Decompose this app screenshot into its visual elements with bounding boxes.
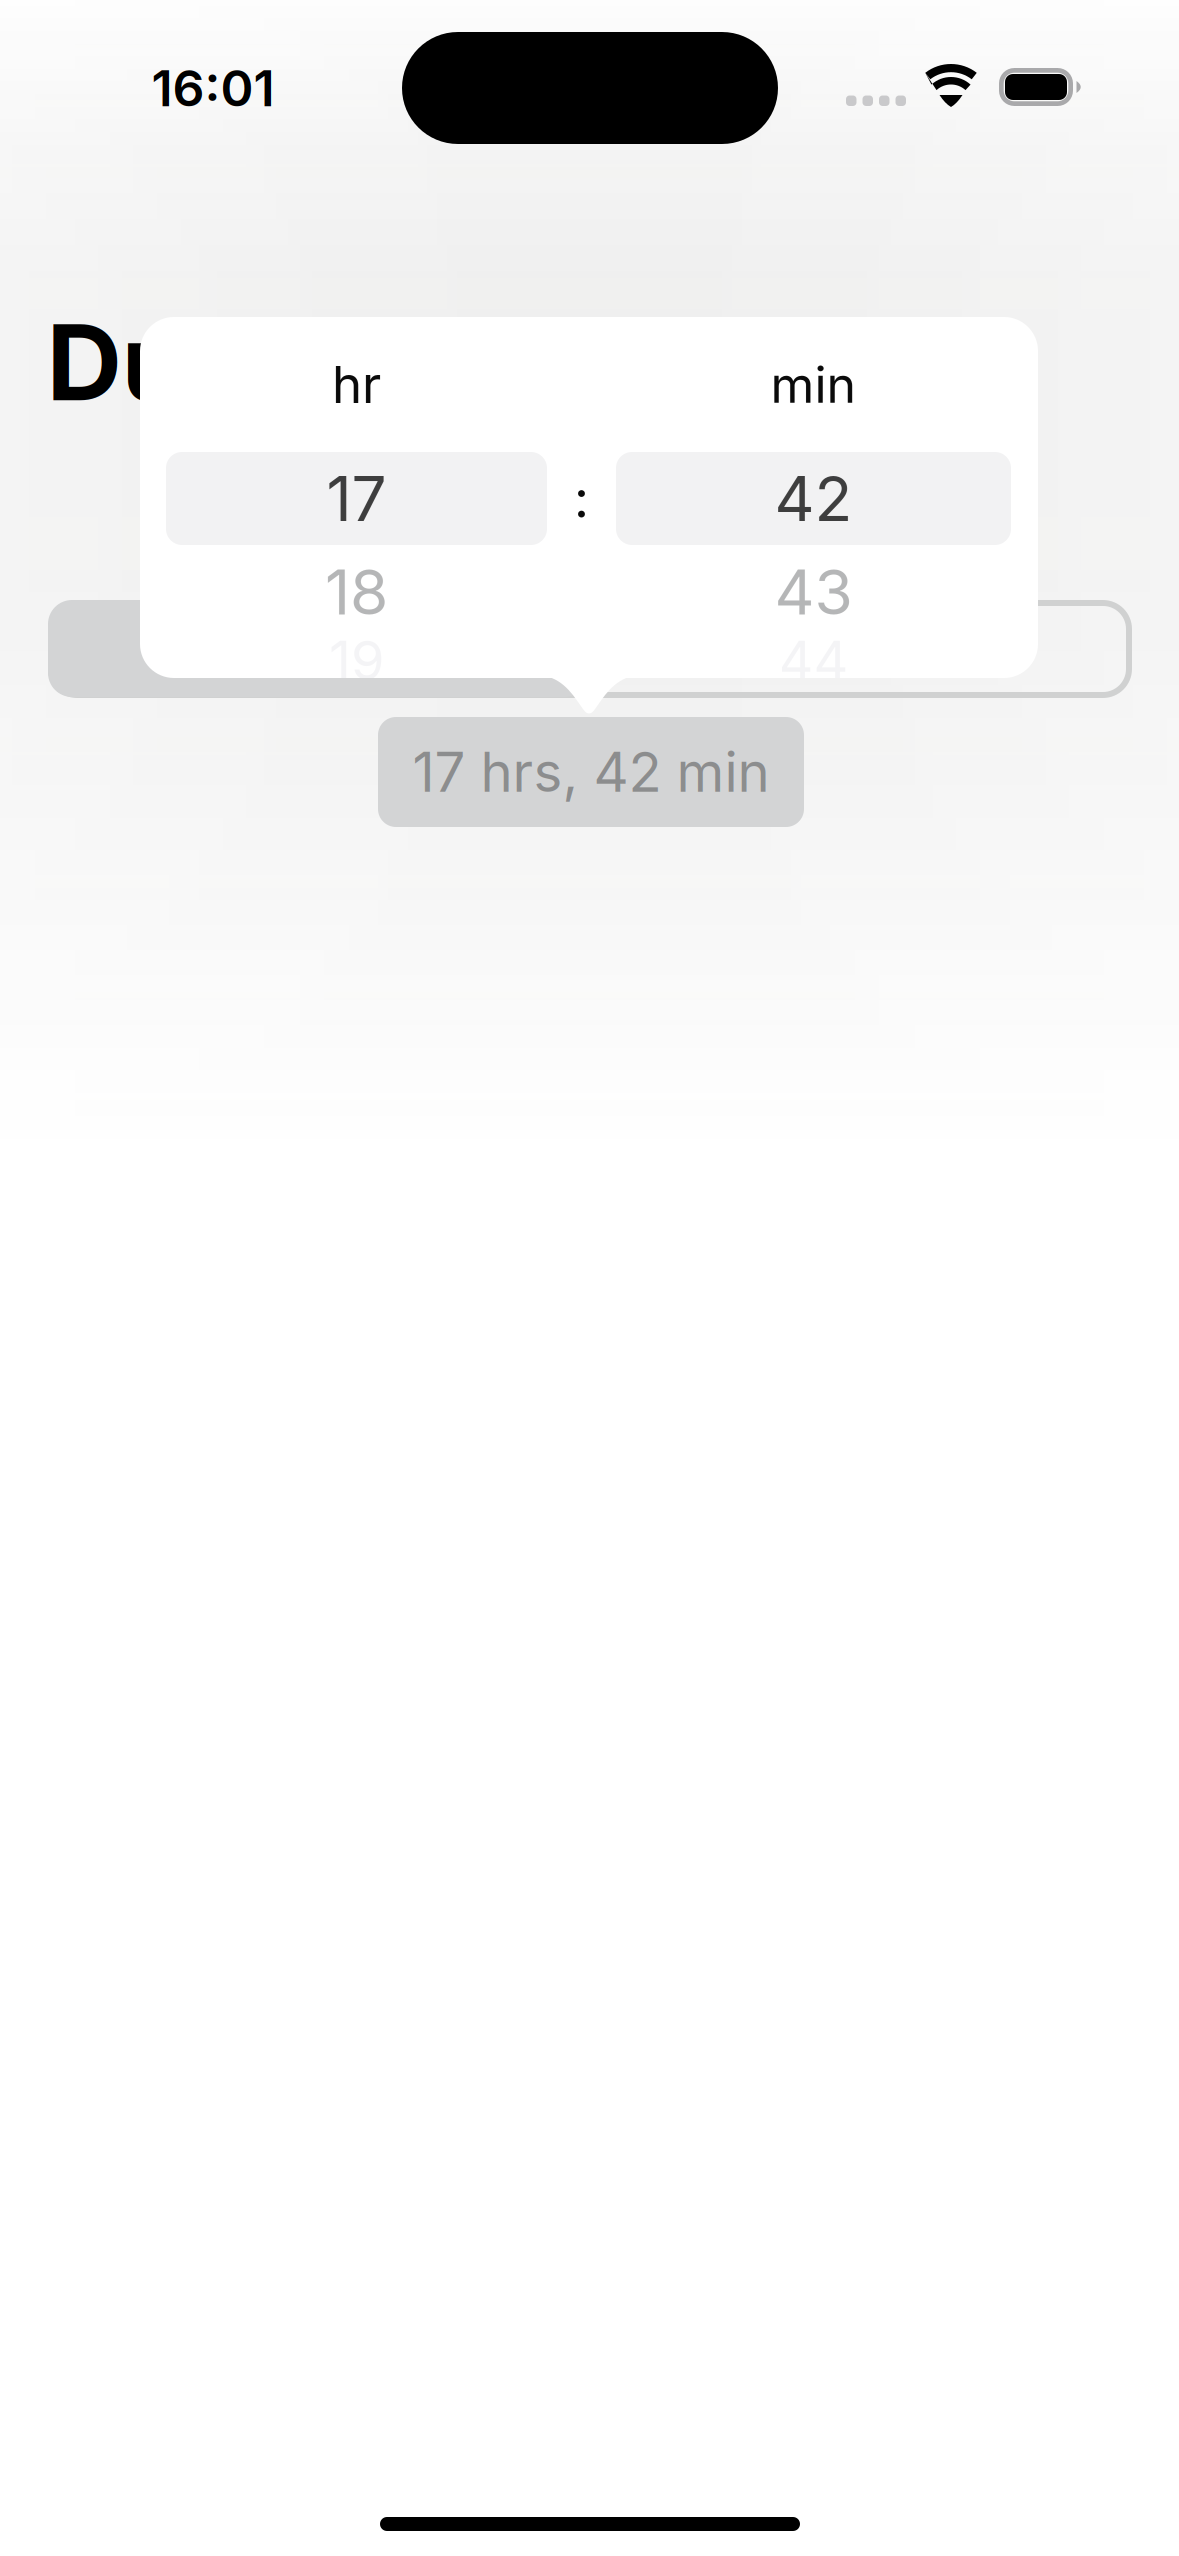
button[interactable]: 43 [616,549,1011,635]
staticText: 16:01 [151,58,274,118]
staticText: 18 [325,554,388,629]
staticText: Duration [46,299,483,425]
staticText: : [574,467,589,530]
staticText: 43 [774,554,852,629]
button[interactable]: 17 [166,452,547,545]
button[interactable]: 17 hrs, 42 min [378,717,804,827]
button[interactable]: 42 [616,452,1011,545]
staticText: hr [332,354,381,415]
staticText: min [770,354,856,415]
staticText: 17 [326,461,386,536]
button[interactable]: 18 [166,549,547,635]
staticText: 44 [778,627,848,693]
staticText: 42 [774,461,852,536]
staticText: 19 [329,627,384,693]
staticText: 17 hrs, 42 min [412,739,769,805]
